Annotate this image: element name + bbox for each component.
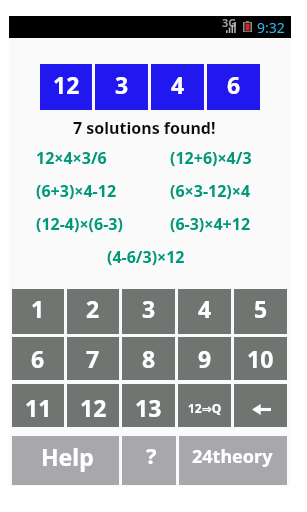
button[interactable]: 13: [122, 384, 175, 427]
staticText: 12: [80, 392, 107, 423]
staticText: (12+6)×4/3: [170, 147, 252, 169]
button[interactable]: 11: [12, 384, 64, 427]
button[interactable]: 12⇒Q: [178, 384, 231, 427]
staticText: 12: [53, 69, 80, 100]
button[interactable]: Backspace: [234, 384, 287, 427]
button[interactable]: 4: [151, 64, 204, 110]
staticText: Help: [41, 441, 94, 472]
button[interactable]: 6: [12, 337, 64, 380]
staticText: 12⇒Q: [188, 400, 222, 416]
staticText: 7 solutions found!: [73, 117, 216, 139]
button[interactable]: Help: [12, 436, 119, 485]
staticText: 9: [198, 343, 212, 374]
staticText: (12-4)×(6-3): [36, 213, 123, 235]
button[interactable]: 2: [67, 289, 119, 334]
button[interactable]: 4: [178, 289, 231, 334]
staticText: 4: [171, 69, 185, 100]
button[interactable]: 24theory: [179, 436, 287, 485]
button[interactable]: 1: [12, 289, 64, 334]
staticText: 4: [198, 293, 212, 324]
staticText: (6+3)×4-12: [36, 180, 117, 202]
button[interactable]: 3: [95, 64, 148, 110]
staticText: 3: [142, 293, 156, 324]
button[interactable]: 3: [122, 289, 175, 334]
button[interactable]: 6: [207, 64, 260, 110]
staticText: (6×3-12)×4: [170, 180, 251, 202]
staticText: 13: [135, 392, 162, 423]
staticText: 1: [31, 293, 45, 324]
staticText: (6-3)×4+12: [170, 213, 251, 235]
staticText: 7: [86, 343, 100, 374]
staticText: 5: [254, 293, 268, 324]
staticText: 12×4×3/6: [36, 147, 107, 169]
button[interactable]: 5: [234, 289, 287, 334]
staticText: 3: [115, 69, 129, 100]
staticText: 6: [227, 69, 241, 100]
staticText: 9:32: [257, 18, 285, 37]
staticText: 8: [142, 343, 156, 374]
staticText: 11: [25, 392, 52, 423]
staticText: 3G: [222, 15, 237, 30]
staticText: ?: [146, 440, 157, 470]
button[interactable]: ?: [122, 436, 176, 485]
button[interactable]: 7: [67, 337, 119, 380]
button[interactable]: 12: [67, 384, 119, 427]
staticText: (4-6/3)×12: [107, 246, 185, 268]
button[interactable]: 8: [122, 337, 175, 380]
staticText: 6: [31, 343, 45, 374]
staticText: 24theory: [192, 444, 273, 469]
other: Backspace: [252, 404, 271, 415]
button[interactable]: 9: [178, 337, 231, 380]
staticText: 10: [247, 343, 274, 374]
staticText: 2: [86, 293, 100, 324]
button[interactable]: 12: [40, 64, 92, 110]
button[interactable]: 10: [234, 337, 287, 380]
